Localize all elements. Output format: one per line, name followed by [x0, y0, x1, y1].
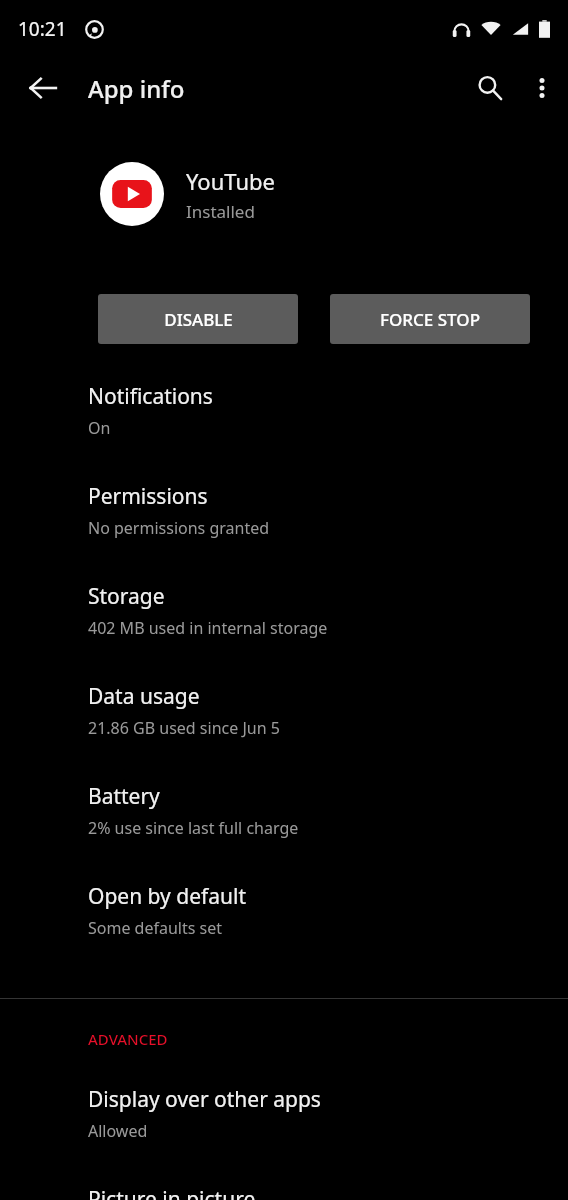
staticText: On — [88, 417, 111, 439]
staticText: 2% use since last full charge — [88, 817, 299, 839]
staticText: Installed — [186, 200, 255, 223]
staticText: Data usage — [88, 682, 200, 711]
button[interactable]: YouTube — [100, 162, 568, 226]
staticText: Display over other apps — [88, 1085, 321, 1114]
button[interactable]: FORCE STOP — [330, 294, 530, 344]
staticText: Allowed — [88, 1120, 148, 1142]
staticText: YouTube — [186, 166, 275, 196]
staticText: App info — [88, 72, 185, 105]
staticText: Open by default — [88, 882, 247, 911]
staticText: Storage — [88, 582, 165, 611]
button[interactable]: Storage — [0, 582, 568, 682]
staticText: 10:21 — [18, 16, 67, 42]
button[interactable]: Open by default — [0, 882, 568, 982]
staticText: 402 MB used in internal storage — [88, 617, 328, 639]
staticText: No permissions granted — [88, 517, 270, 539]
staticText: ADVANCED — [88, 1029, 168, 1049]
staticText: 21.86 GB used since Jun 5 — [88, 717, 280, 739]
staticText: FORCE STOP — [380, 308, 480, 331]
button[interactable]: Battery — [0, 782, 568, 882]
button[interactable]: Search — [464, 62, 516, 114]
button[interactable]: Notifications — [0, 382, 568, 482]
staticText: DISABLE — [164, 308, 233, 331]
button[interactable]: Back — [18, 63, 68, 113]
staticText: Some defaults set — [88, 917, 223, 939]
button[interactable]: Permissions — [0, 482, 568, 582]
staticText: Picture in picture — [88, 1185, 256, 1200]
button[interactable]: Data usage — [0, 682, 568, 782]
staticText: Notifications — [88, 382, 213, 411]
staticText: Battery — [88, 782, 160, 811]
button[interactable]: Display over other apps — [0, 1085, 568, 1185]
button[interactable]: More options — [516, 62, 568, 114]
button[interactable]: Picture in picture — [0, 1185, 568, 1200]
button[interactable]: DISABLE — [98, 294, 298, 344]
staticText: Permissions — [88, 482, 208, 511]
